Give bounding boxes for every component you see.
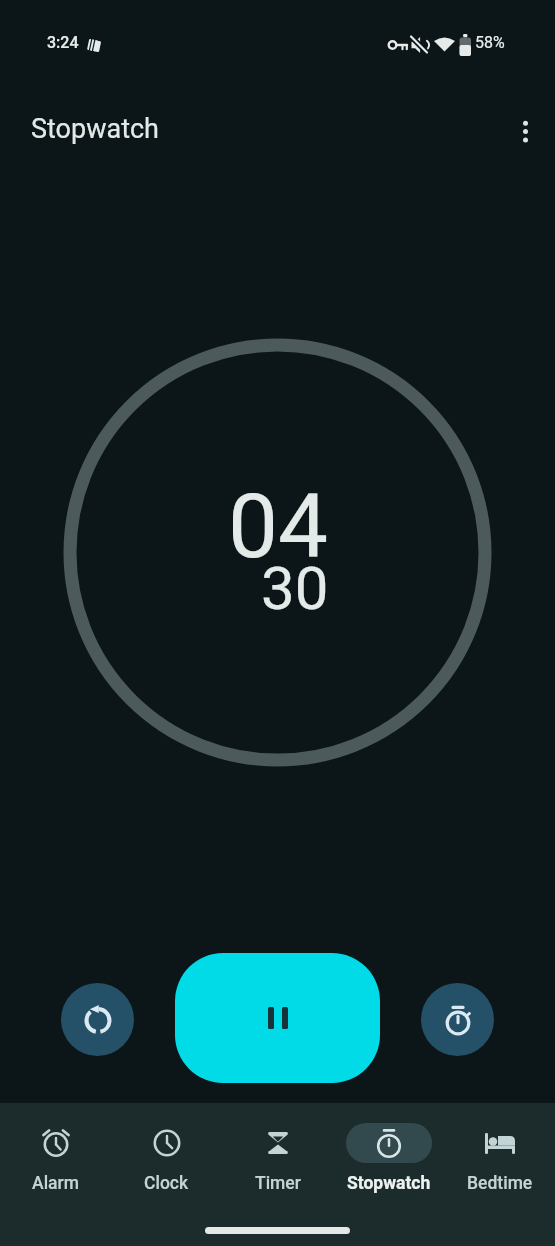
staticText: Bedtime bbox=[467, 1173, 533, 1194]
staticText: Timer bbox=[255, 1173, 301, 1194]
button[interactable]: Bedtime bbox=[444, 1123, 555, 1194]
button[interactable] bbox=[511, 117, 540, 146]
staticText: Stopwatch bbox=[31, 113, 159, 145]
staticText: 3:24 bbox=[47, 33, 79, 52]
staticText: Stopwatch bbox=[347, 1173, 431, 1194]
button[interactable]: Alarm bbox=[0, 1123, 111, 1194]
button[interactable] bbox=[61, 983, 134, 1056]
staticText: 30 bbox=[261, 553, 329, 623]
staticText: 04 bbox=[228, 474, 329, 578]
button[interactable] bbox=[175, 953, 380, 1083]
staticText: 58% bbox=[475, 33, 505, 52]
button[interactable] bbox=[421, 983, 494, 1056]
button[interactable]: Clock bbox=[111, 1123, 222, 1194]
button[interactable]: Timer bbox=[222, 1123, 333, 1194]
button[interactable]: Stopwatch bbox=[333, 1123, 444, 1194]
staticText: Clock bbox=[144, 1173, 189, 1194]
staticText: Alarm bbox=[32, 1173, 79, 1194]
